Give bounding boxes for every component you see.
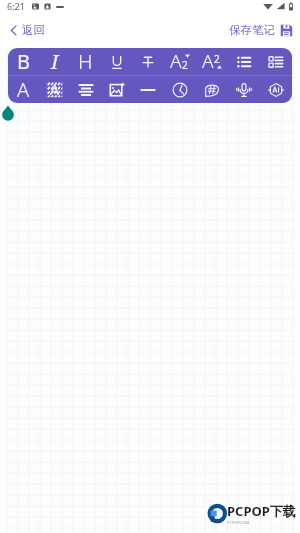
button[interactable]: Insert image <box>101 76 132 103</box>
button[interactable]: Superscript <box>196 48 228 75</box>
button[interactable]: Tag <box>196 76 228 103</box>
staticText: B <box>17 48 30 75</box>
button[interactable]: Checklist <box>260 48 292 75</box>
button[interactable]: Strikethrough <box>132 48 164 75</box>
button[interactable]: Voice input <box>228 76 260 103</box>
staticText: H <box>78 48 93 75</box>
button[interactable]: AI assistant <box>260 76 292 103</box>
button[interactable]: 保存笔记 <box>223 19 300 41</box>
staticText: A <box>50 80 59 99</box>
staticText: 返回 <box>22 23 45 37</box>
button[interactable]: Align center <box>70 76 101 103</box>
button[interactable]: Bold <box>8 48 39 75</box>
button[interactable]: Insert time <box>164 76 196 103</box>
staticText: 保存笔记 <box>229 23 275 37</box>
button[interactable]: 返回 <box>0 18 51 42</box>
staticText: 2 <box>214 52 220 66</box>
button[interactable]: Italic <box>39 48 70 75</box>
staticText: A <box>202 48 214 70</box>
button[interactable]: Subscript <box>164 48 196 75</box>
staticText: PCPOP下载 <box>227 502 296 520</box>
staticText: A <box>170 48 182 70</box>
button[interactable]: Text color <box>8 76 39 103</box>
button[interactable]: Highlight <box>39 76 70 103</box>
staticText: I <box>51 48 59 75</box>
staticText: PCPOP.COM <box>227 520 250 525</box>
button[interactable]: Heading <box>70 48 101 75</box>
button[interactable]: Divider <box>132 76 164 103</box>
staticText: 2 <box>182 58 188 72</box>
button[interactable]: Underline <box>101 48 132 75</box>
button[interactable]: Bullet list <box>228 48 260 75</box>
staticText: 6:21 <box>7 0 25 12</box>
staticText: A <box>17 76 30 103</box>
